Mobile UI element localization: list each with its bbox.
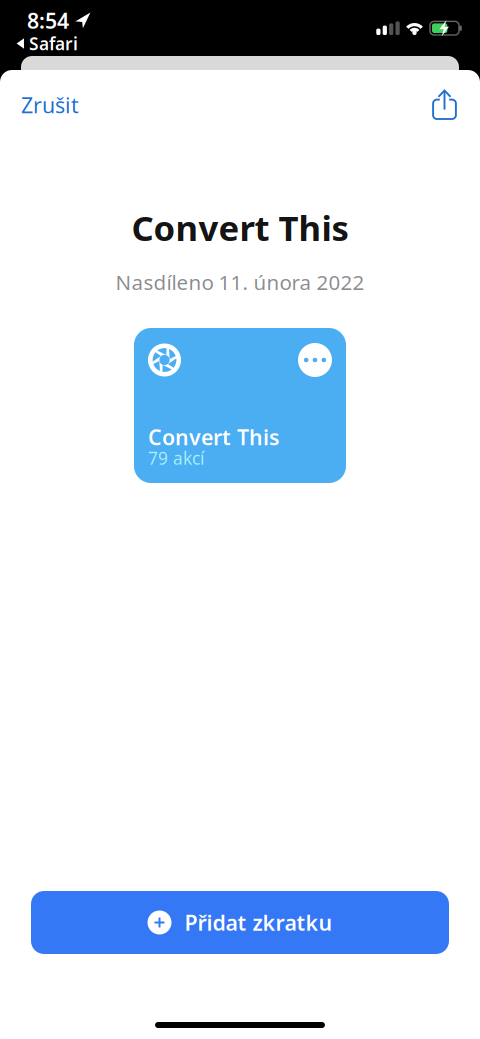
- staticText: 79 akcí: [148, 446, 204, 469]
- button[interactable]: Zrušit: [0, 70, 97, 136]
- staticText: Přidat zkratku: [184, 908, 332, 937]
- button[interactable]: Přidat zkratku: [31, 891, 449, 954]
- staticText: Zrušit: [21, 91, 79, 119]
- staticText: Safari: [29, 32, 78, 55]
- button[interactable]: More options: [298, 343, 332, 377]
- staticText: 8:54: [27, 6, 69, 35]
- staticText: Convert This: [148, 423, 280, 451]
- staticText: Convert This: [131, 204, 348, 250]
- button[interactable]: Share: [418, 79, 480, 127]
- staticText: Nasdíleno 11. února 2022: [115, 268, 364, 296]
